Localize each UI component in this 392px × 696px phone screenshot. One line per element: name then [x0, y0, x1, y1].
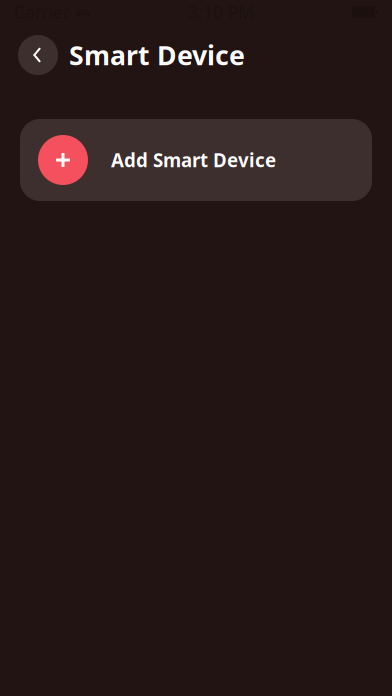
button[interactable]: Back — [18, 35, 58, 75]
staticText: Smart Device — [69, 37, 245, 73]
staticText: Add Smart Device — [111, 148, 276, 172]
button[interactable]: Add Smart Device — [20, 119, 372, 201]
